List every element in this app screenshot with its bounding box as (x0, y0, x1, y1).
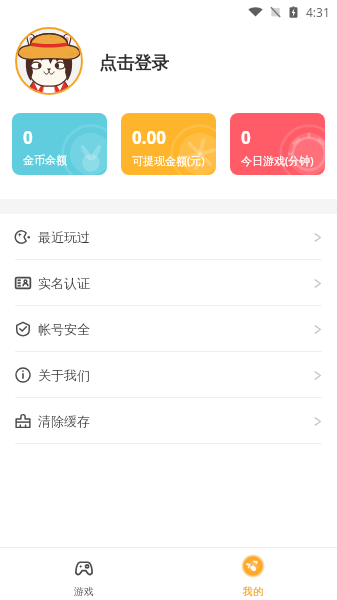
button[interactable]: 我的 (168, 548, 337, 600)
button[interactable]: 游戏 (0, 548, 168, 600)
staticText: 4:31 (306, 4, 330, 20)
other: 我的 (241, 554, 265, 578)
button[interactable]: 0.00 (121, 113, 216, 175)
staticText: 0 (241, 126, 251, 149)
staticText: 游戏 (74, 585, 94, 598)
staticText: 关于我们 (38, 367, 90, 383)
button[interactable]: 0 (12, 113, 107, 175)
staticText: 最近玩过 (38, 229, 90, 245)
staticText: 帐号安全 (38, 321, 90, 337)
button[interactable]: 关于我们 (0, 352, 337, 398)
staticText: 金币余额 (23, 153, 67, 167)
staticText: 实名认证 (38, 275, 90, 291)
staticText: 0.00 (132, 126, 166, 149)
button[interactable]: 点击登录 (0, 24, 337, 98)
button[interactable]: 最近玩过 (0, 214, 337, 260)
button[interactable]: 0 (230, 113, 325, 175)
staticText: 我的 (243, 585, 263, 598)
button[interactable]: 清除缓存 (0, 398, 337, 444)
staticText: 点击登录 (99, 52, 169, 74)
button[interactable]: 实名认证 (0, 260, 337, 306)
staticText: 今日游戏(分钟) (241, 153, 314, 168)
staticText: 0 (23, 126, 33, 149)
staticText: 清除缓存 (38, 413, 90, 429)
button[interactable]: 帐号安全 (0, 306, 337, 352)
staticText: 可提现金额(元) (132, 153, 205, 168)
